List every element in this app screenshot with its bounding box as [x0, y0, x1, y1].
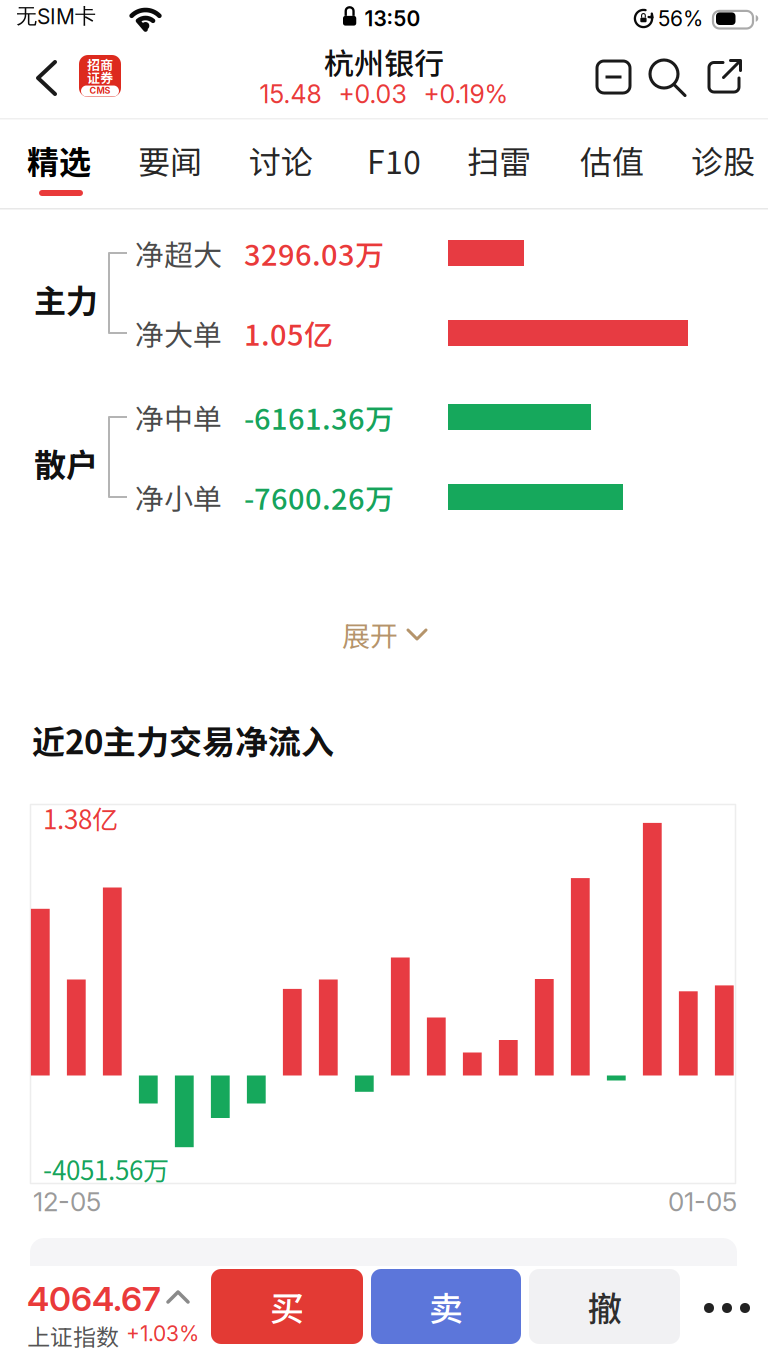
button[interactable]: 卖 — [371, 1269, 521, 1344]
staticText: 估值 — [580, 137, 644, 183]
staticText: 散户 — [34, 440, 98, 486]
staticText: 近20主力交易净流入 — [32, 716, 334, 764]
staticText: +0.03 — [338, 79, 406, 109]
staticText: 12-05 — [33, 1186, 101, 1217]
staticText: 卖 — [429, 1282, 463, 1331]
staticText: 杭州银行 — [324, 40, 444, 83]
staticText: 15.48 — [259, 79, 321, 109]
staticText: F10 — [367, 137, 421, 183]
button[interactable]: 撤 — [529, 1269, 680, 1344]
staticText: 上证指数 — [27, 1319, 119, 1352]
staticText: 买 — [270, 1282, 304, 1331]
button[interactable] — [648, 59, 688, 97]
staticText: -4051.56万 — [43, 1150, 169, 1188]
staticText: 13:50 — [364, 6, 420, 31]
staticText: 56% — [658, 6, 703, 31]
button[interactable]: 精选 — [0, 132, 119, 188]
staticText: 4064.67 — [27, 1278, 161, 1319]
button[interactable] — [695, 1276, 759, 1340]
button[interactable]: 要闻 — [110, 132, 230, 188]
button[interactable]: F10 — [334, 132, 454, 188]
button[interactable] — [708, 61, 742, 94]
staticText: 主力 — [34, 276, 98, 322]
staticText: CMS — [89, 85, 110, 96]
staticText: 1.38亿 — [43, 799, 118, 837]
button[interactable] — [597, 61, 630, 93]
staticText: 诊股 — [691, 137, 755, 183]
staticText: 1.05亿 — [244, 312, 333, 354]
staticText: 精选 — [27, 137, 91, 183]
button[interactable]: 展开 — [342, 614, 432, 656]
staticText: 要闻 — [138, 137, 202, 183]
staticText: 3296.03万 — [244, 232, 384, 274]
button[interactable]: 讨论 — [221, 132, 341, 188]
staticText: 撤 — [587, 1282, 621, 1331]
button[interactable] — [36, 59, 74, 97]
button[interactable]: 4064.67 — [27, 1275, 197, 1355]
staticText: 招商 — [87, 55, 113, 74]
button[interactable]: 估值 — [552, 132, 672, 188]
staticText: +0.19% — [423, 79, 508, 109]
staticText: 净大单 — [135, 312, 222, 354]
button[interactable]: 扫雷 — [439, 132, 559, 188]
staticText: 证券 — [87, 68, 113, 87]
staticText: 展开 — [342, 614, 398, 654]
button[interactable]: 诊股 — [663, 132, 768, 188]
staticText: -7600.26万 — [244, 476, 394, 518]
staticText: 扫雷 — [467, 137, 531, 183]
staticText: 无SIM卡 — [16, 3, 96, 29]
staticText: -6161.36万 — [244, 396, 394, 438]
staticText: +1.03% — [126, 1321, 199, 1346]
staticText: 讨论 — [249, 137, 313, 183]
staticText: 净超大 — [135, 232, 222, 274]
button[interactable]: 招商 — [79, 55, 121, 97]
staticText: 净中单 — [135, 396, 222, 438]
staticText: 净小单 — [135, 476, 222, 518]
staticText: 01-05 — [668, 1186, 737, 1217]
button[interactable]: 买 — [211, 1269, 363, 1344]
